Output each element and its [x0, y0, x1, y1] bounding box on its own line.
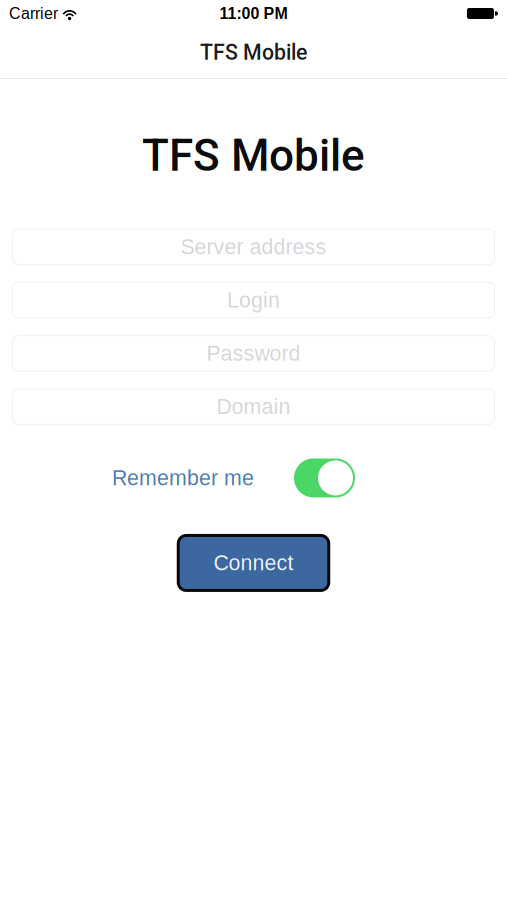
button[interactable]: Connect	[178, 535, 329, 590]
staticText: TFS Mobile	[200, 40, 307, 65]
staticText: Domain	[216, 395, 290, 419]
button[interactable]: Server address	[12, 229, 494, 265]
staticText: 11:00 PM	[219, 5, 287, 22]
button[interactable]: Login	[12, 282, 494, 318]
staticText: Remember me	[112, 466, 254, 490]
staticText: Password	[206, 341, 300, 365]
staticText: TFS Mobile	[142, 130, 365, 182]
button[interactable]: Password	[12, 336, 494, 371]
staticText: Login	[227, 288, 280, 312]
staticText: Carrier	[9, 5, 58, 22]
staticText: Connect	[213, 551, 293, 575]
staticText: Server address	[180, 235, 326, 259]
button[interactable]: Domain	[12, 389, 494, 424]
button[interactable]: Remember me	[0, 458, 507, 497]
